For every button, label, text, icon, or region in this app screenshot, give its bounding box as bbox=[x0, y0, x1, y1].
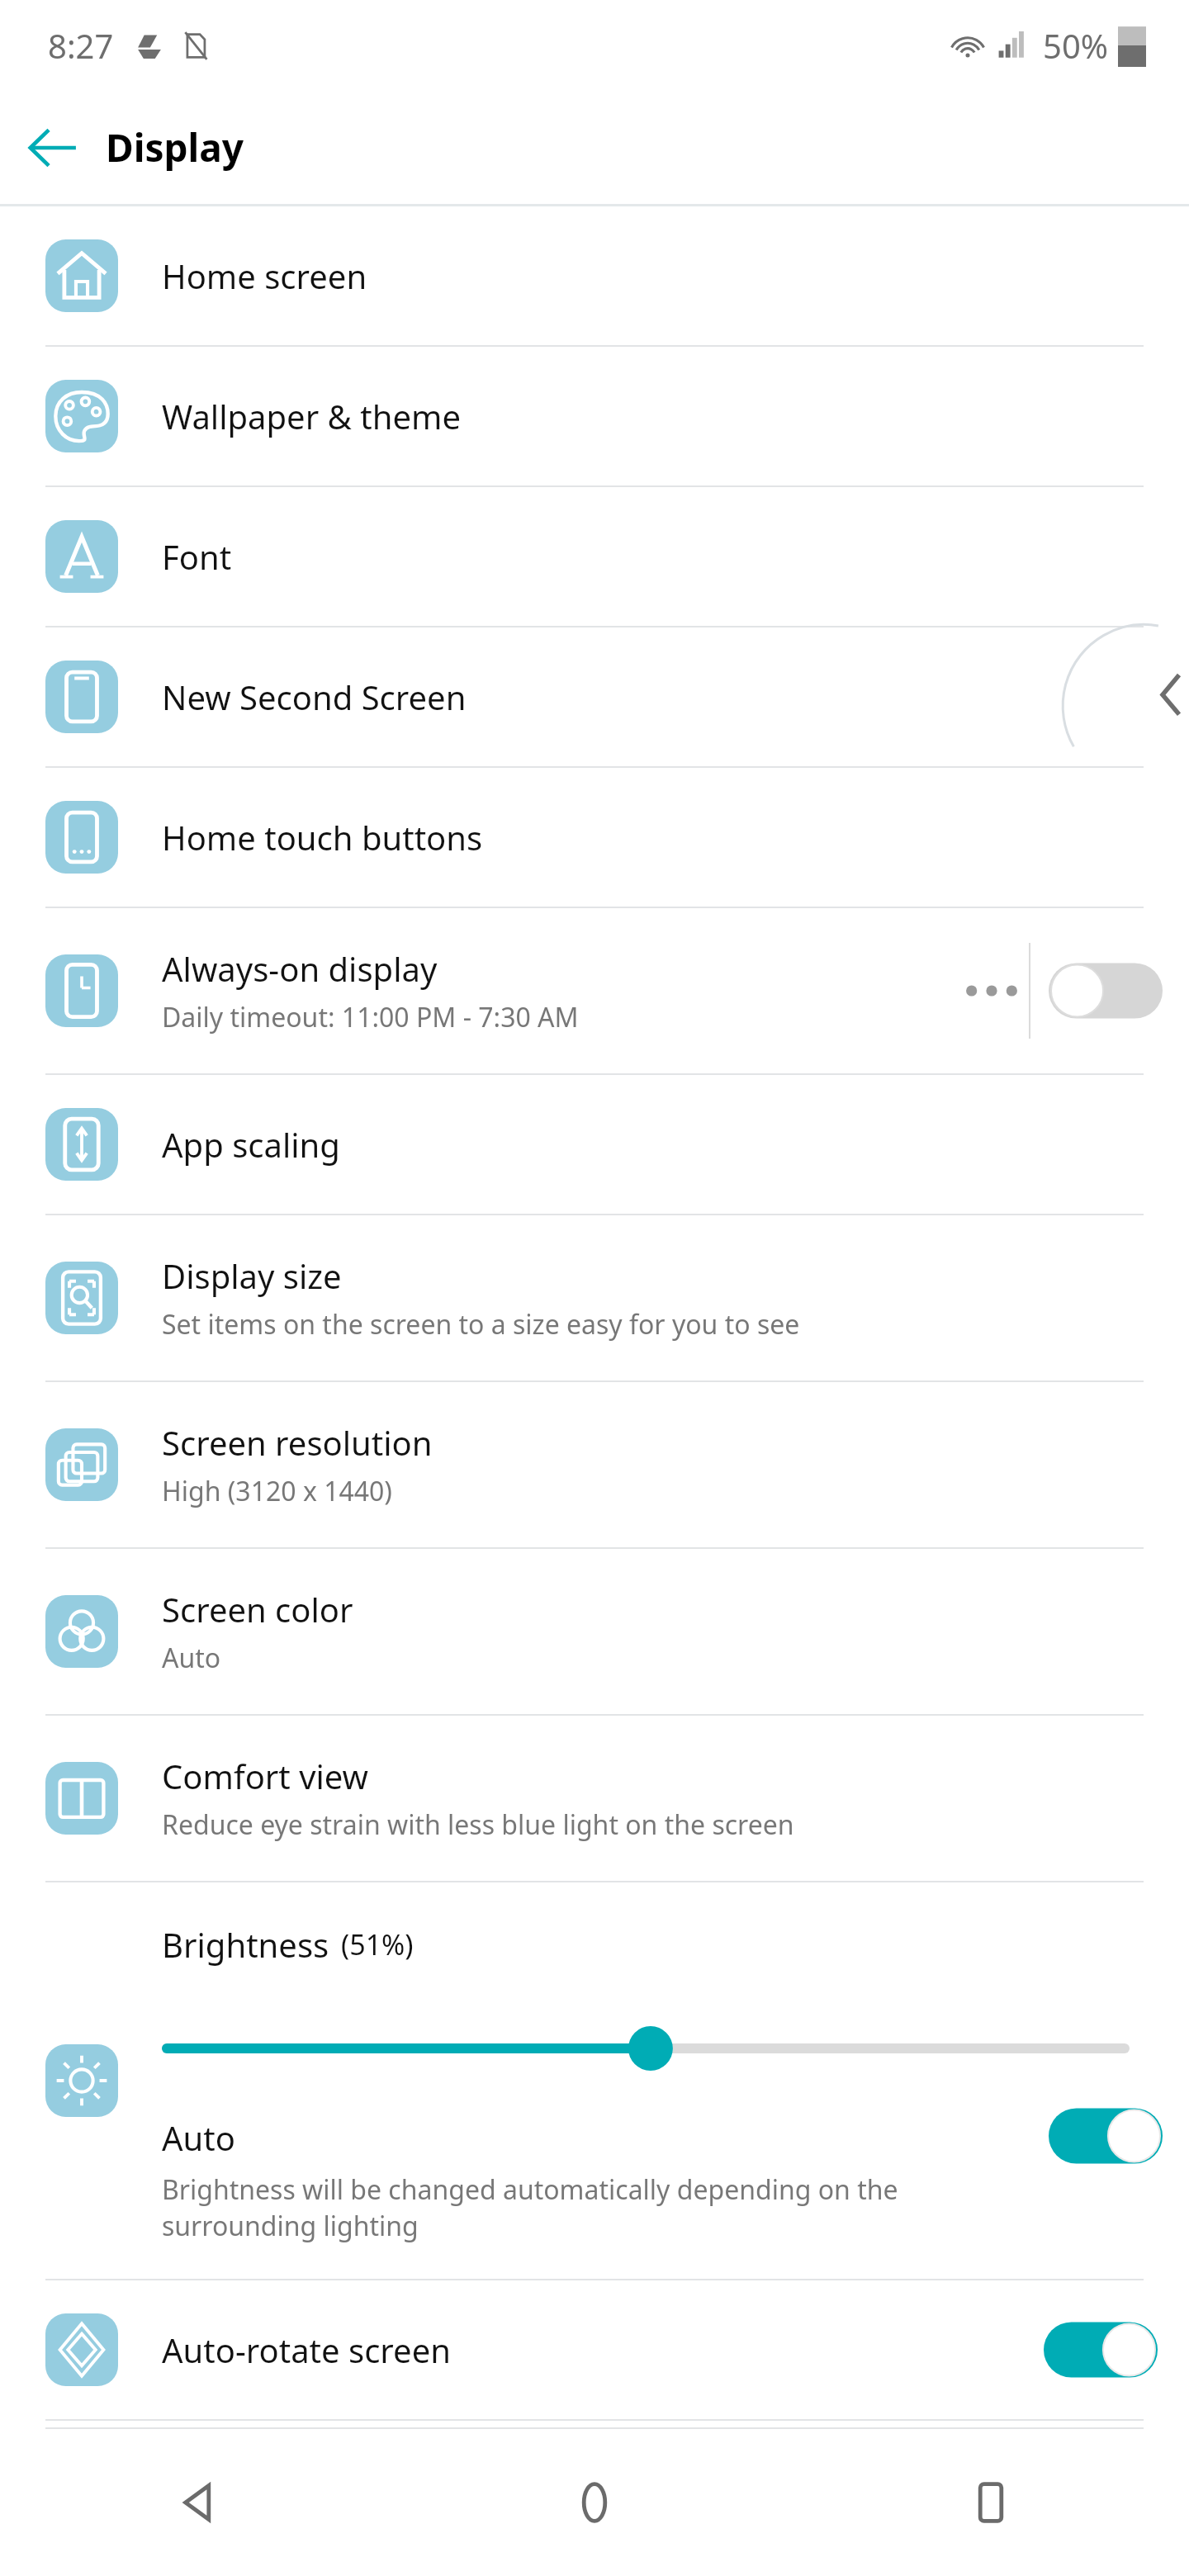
button[interactable]: Screen color bbox=[0, 1549, 1189, 1714]
staticText: New Second Screen bbox=[162, 675, 467, 719]
staticText: Auto bbox=[162, 2115, 235, 2160]
staticText: Always-on display bbox=[162, 946, 438, 991]
staticText: Auto bbox=[162, 1640, 221, 1676]
staticText: Brightness will be changed automatically… bbox=[162, 2171, 1032, 2244]
staticText: Display bbox=[106, 121, 244, 173]
staticText: App scaling bbox=[162, 1122, 340, 1167]
button[interactable]: Navigate up bbox=[0, 91, 106, 204]
staticText: Daily timeout: 11:00 PM - 7:30 AM bbox=[162, 999, 579, 1035]
staticText: Auto-rotate screen bbox=[162, 2327, 451, 2372]
staticText: High (3120 x 1440) bbox=[162, 1473, 392, 1509]
staticText: Home screen bbox=[162, 253, 367, 298]
staticText: 8:27 bbox=[48, 23, 114, 68]
button[interactable]: App scaling bbox=[0, 1075, 1189, 1214]
button[interactable]: Home touch buttons bbox=[0, 768, 1189, 907]
staticText: 50% bbox=[1043, 23, 1108, 68]
button[interactable]: Edge panel bbox=[1106, 636, 1189, 776]
staticText: Font bbox=[162, 534, 232, 579]
button[interactable]: Display size bbox=[0, 1215, 1189, 1380]
staticText: Comfort view bbox=[162, 1754, 369, 1798]
staticText: Brightness bbox=[162, 1922, 329, 1967]
staticText: Wallpaper & theme bbox=[162, 394, 461, 438]
staticText: Home touch buttons bbox=[162, 815, 483, 859]
button[interactable]: Font bbox=[0, 487, 1189, 626]
button[interactable]: Comfort view bbox=[0, 1716, 1189, 1881]
staticText: Screen resolution bbox=[162, 1420, 433, 1465]
button[interactable]: Toggle off bbox=[1049, 959, 1163, 1023]
staticText: Display size bbox=[162, 1253, 342, 1298]
button[interactable]: Auto-rotate screen bbox=[0, 2280, 1189, 2419]
button[interactable]: Screen resolution bbox=[0, 1382, 1189, 1547]
button[interactable]: Wallpaper & theme bbox=[0, 347, 1189, 485]
button[interactable]: Recents bbox=[793, 2429, 1189, 2576]
staticText: Screen color bbox=[162, 1587, 353, 1631]
staticText: Set items on the screen to a size easy f… bbox=[162, 1306, 800, 1342]
button[interactable]: Auto bbox=[0, 2115, 1189, 2244]
button[interactable]: New Second Screen bbox=[0, 627, 1189, 766]
button[interactable]: Always-on display bbox=[0, 908, 955, 1073]
button[interactable]: Home screen bbox=[0, 206, 1189, 345]
button[interactable]: More options bbox=[955, 945, 1029, 1036]
button[interactable]: Back bbox=[0, 2429, 396, 2576]
button[interactable]: Toggle on bbox=[1044, 2318, 1158, 2382]
button[interactable]: Brightness slider bbox=[162, 2011, 1130, 2086]
button[interactable]: Toggle on bbox=[1049, 2104, 1163, 2168]
staticText: Reduce eye strain with less blue light o… bbox=[162, 1807, 794, 1843]
button[interactable]: Home bbox=[396, 2429, 793, 2576]
staticText: (51%) bbox=[341, 1925, 414, 1963]
